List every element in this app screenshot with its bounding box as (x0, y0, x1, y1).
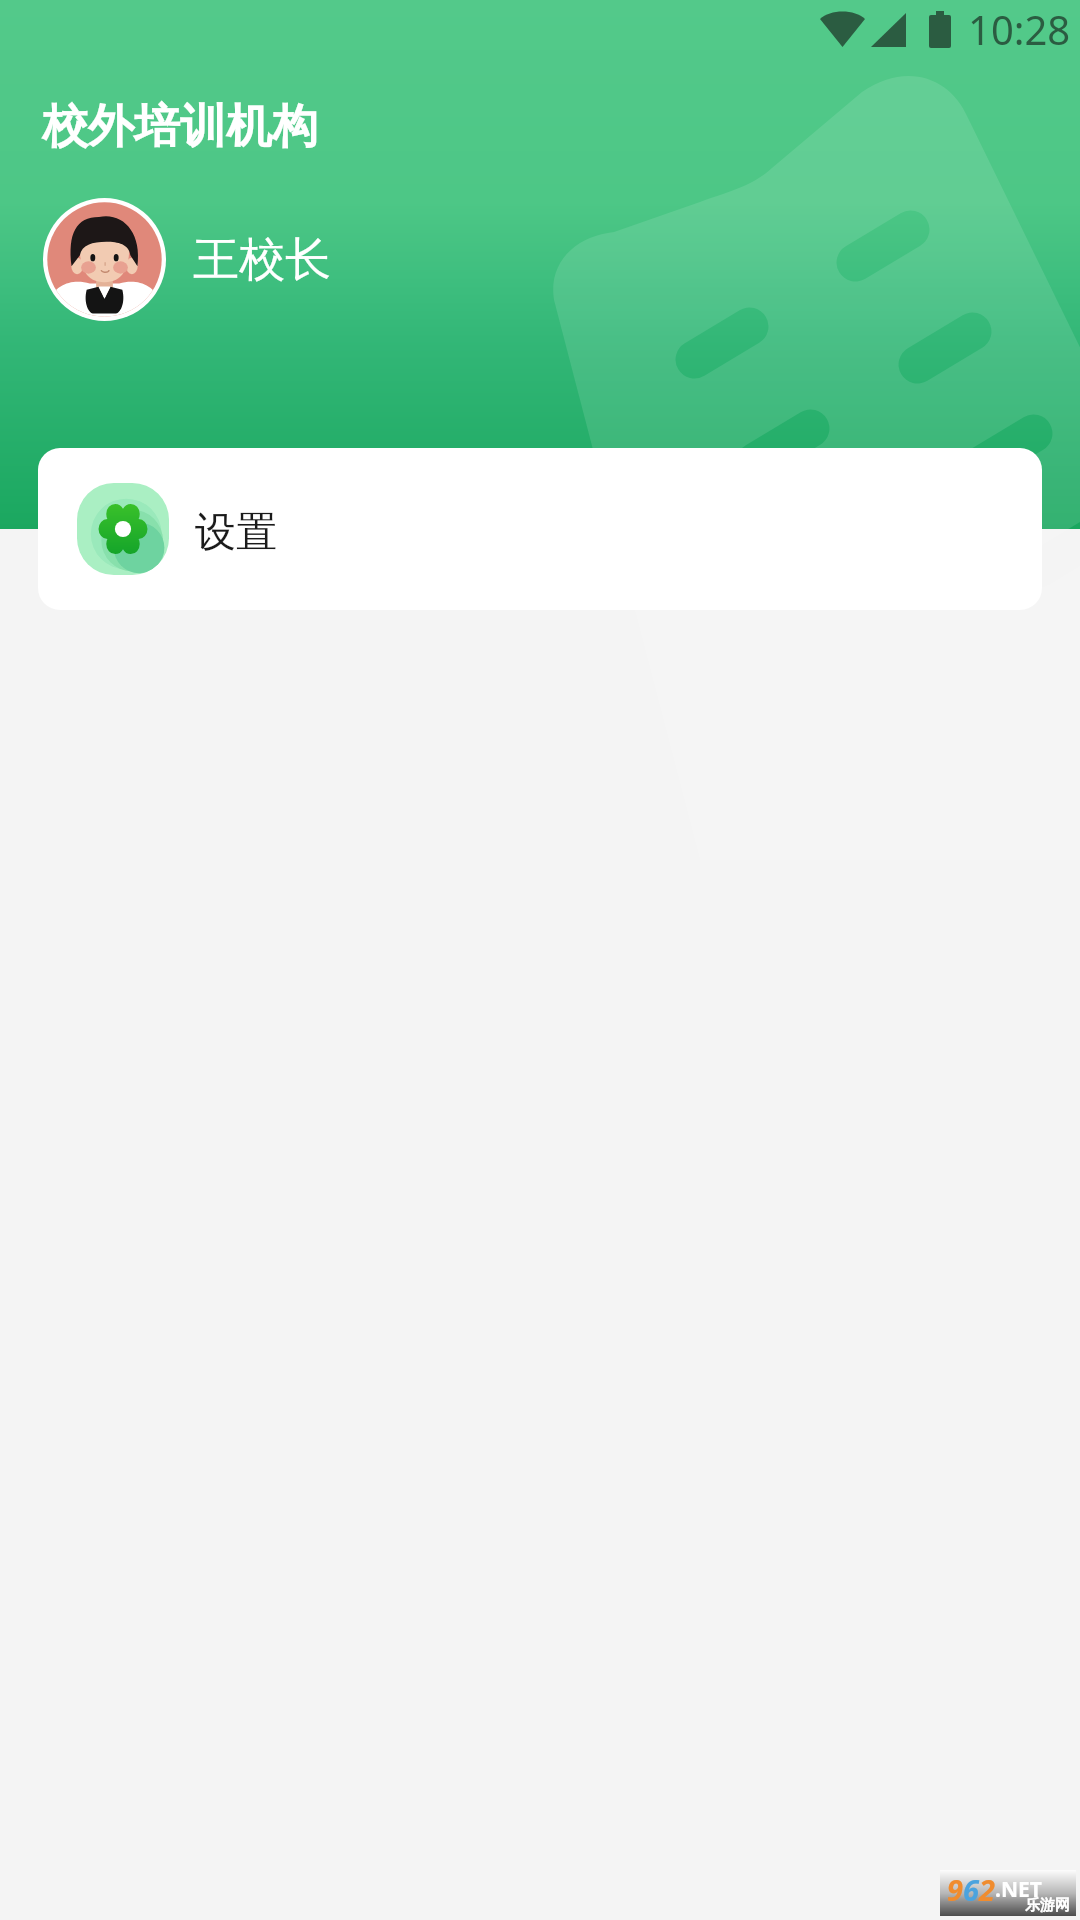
staticText: 设置 (195, 507, 277, 559)
button[interactable]: 设置 (38, 448, 1042, 610)
staticText: 校外培训机构 (42, 98, 318, 156)
staticText: 王校长 (193, 231, 331, 289)
staticText: 乐游网 (1025, 1896, 1070, 1915)
staticText: 10:28 (968, 2, 1071, 56)
other: Profile photo (43, 198, 166, 321)
staticText: 9 (947, 1870, 963, 1909)
staticText: 2 (979, 1870, 995, 1909)
staticText: .NET (995, 1875, 1042, 1904)
button[interactable]: Profile photo (43, 198, 331, 321)
staticText: 6 (963, 1870, 979, 1909)
